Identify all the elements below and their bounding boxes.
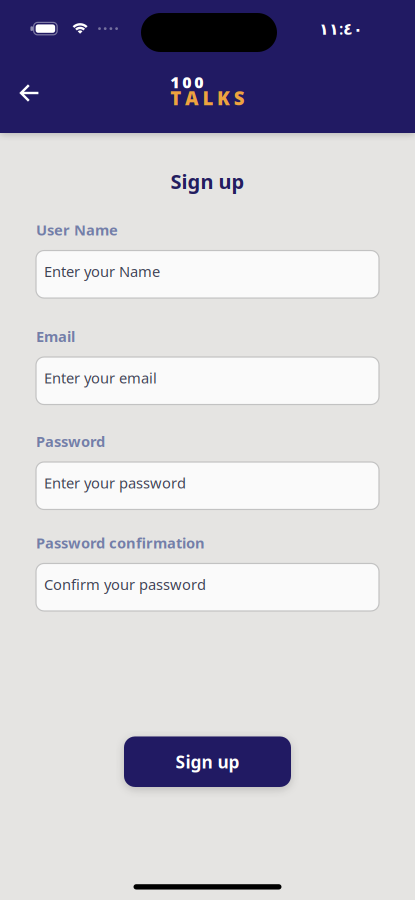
staticText: Sign up bbox=[175, 750, 239, 773]
staticText: Password bbox=[36, 431, 105, 451]
staticText: Sign up bbox=[170, 168, 244, 195]
staticText: User Name bbox=[36, 220, 118, 240]
staticText: 0 bbox=[194, 71, 203, 93]
staticText: Enter your email bbox=[44, 368, 157, 387]
button[interactable]: Password bbox=[36, 462, 379, 509]
staticText: Enter your password bbox=[44, 473, 186, 492]
button[interactable]: Sign up bbox=[124, 736, 291, 787]
button[interactable]: User Name bbox=[36, 250, 379, 298]
button[interactable]: Back bbox=[0, 66, 39, 120]
staticText: T bbox=[170, 86, 181, 110]
staticText: Password confirmation bbox=[36, 533, 205, 552]
staticText: Email bbox=[36, 326, 75, 346]
button[interactable]: Email bbox=[36, 357, 379, 404]
staticText: 0 bbox=[182, 71, 191, 93]
staticText: L bbox=[202, 86, 213, 110]
staticText: Confirm your password bbox=[44, 574, 206, 594]
staticText: S bbox=[234, 86, 245, 110]
staticText: ١١:٤٠ bbox=[319, 18, 363, 39]
staticText: Enter your Name bbox=[44, 261, 160, 281]
button[interactable]: Password confirmation bbox=[36, 563, 379, 611]
staticText: A bbox=[185, 86, 199, 110]
staticText: 1 bbox=[170, 71, 179, 93]
staticText: K bbox=[217, 86, 230, 110]
